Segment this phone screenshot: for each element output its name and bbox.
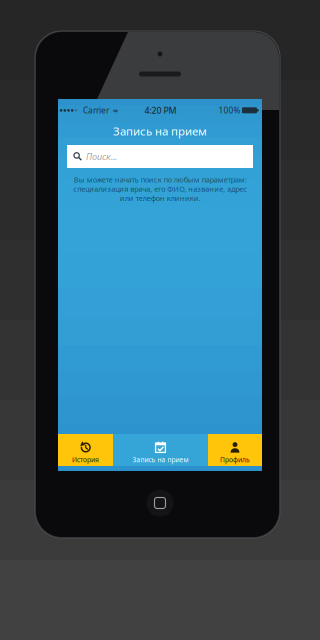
staticText: История — [72, 455, 99, 464]
staticText: Carrier — [83, 105, 109, 116]
staticText: Профиль — [220, 455, 250, 464]
button[interactable]: История — [58, 434, 113, 466]
button[interactable]: Поиск... — [67, 145, 253, 168]
button[interactable]: Профиль — [208, 434, 262, 466]
staticText: 4:20 PM — [144, 105, 176, 116]
staticText: Поиск... — [86, 151, 117, 162]
button[interactable]: Запись на прием — [113, 434, 208, 466]
staticText: Запись на прием — [113, 124, 207, 138]
staticText: Вы можете начать поиск по любым параметр… — [73, 175, 247, 203]
staticText: 100% — [218, 105, 240, 116]
staticText: Запись на прием — [132, 455, 188, 464]
